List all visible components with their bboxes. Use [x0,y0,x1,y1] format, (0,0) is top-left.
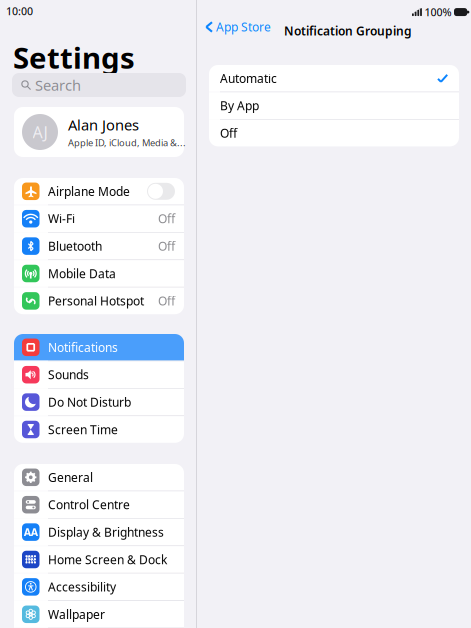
staticText: Control Centre [48,497,130,513]
staticText: App Store [216,19,271,35]
staticText: Off [220,125,237,141]
staticText: By App [220,98,259,114]
button[interactable]: AJ [14,107,184,157]
staticText: Off [158,211,175,227]
staticText: Display & Brightness [48,524,164,540]
button[interactable]: AA [14,519,184,545]
staticText: Notification Grouping [284,23,412,39]
staticText: 100% [424,5,451,19]
staticText: Bluetooth [48,238,102,254]
staticText: Airplane Mode [48,183,130,199]
staticText: Mobile Data [48,265,116,281]
staticText: AA [24,525,38,539]
staticText: Accessibility [48,579,116,595]
button[interactable]: Bluetooth [14,233,184,259]
button[interactable]: Notifications [14,334,184,361]
button[interactable]: General [14,464,184,491]
button[interactable]: Home Screen & Dock [14,546,184,573]
button[interactable]: Automatic [209,65,459,92]
staticText: Search [35,75,81,95]
staticText: AJ [32,121,47,143]
staticText: General [48,469,93,485]
button[interactable]: Do Not Disturb [14,389,184,415]
staticText: Personal Hotspot [48,293,144,309]
button[interactable]: Airplane Mode [14,178,184,205]
button[interactable]: Wi-Fi [14,205,184,232]
staticText: Apple ID, iCloud, Media &... [68,136,186,149]
staticText: Wi-Fi [48,211,75,227]
staticText: Alan Jones [68,115,139,135]
staticText: Screen Time [48,421,118,437]
staticText: Off [158,293,175,309]
staticText: Settings [13,38,135,77]
button[interactable]: Accessibility [14,574,184,600]
staticText: 10:00 [6,4,33,18]
button[interactable]: Mobile Data [14,260,184,287]
button[interactable]: Personal Hotspot [14,288,184,314]
staticText: Off [158,238,175,254]
staticText: Do Not Disturb [48,394,131,410]
button[interactable]: App Store [205,19,275,35]
button[interactable]: Control Centre [14,491,184,518]
staticText: Wallpaper [48,606,105,622]
button[interactable]: Sounds [14,361,184,388]
button[interactable]: Screen Time [14,416,184,443]
staticText: Home Screen & Dock [48,551,167,567]
button[interactable]: Wallpaper [14,601,184,628]
staticText: Notifications [48,339,118,355]
button[interactable]: By App [209,92,459,119]
staticText: Sounds [48,367,89,383]
staticText: Automatic [220,70,277,86]
button[interactable]: Off [209,120,459,146]
